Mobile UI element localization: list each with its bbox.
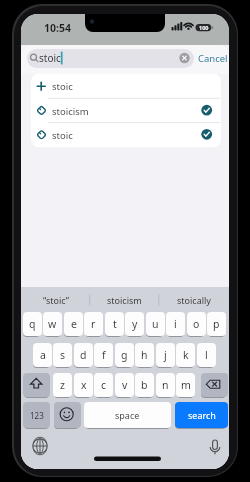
staticText: i — [174, 317, 177, 331]
button[interactable] — [31, 74, 221, 98]
staticText: q — [29, 317, 36, 331]
button[interactable]: x — [74, 373, 93, 397]
button[interactable]: d — [74, 343, 93, 367]
staticText: 123 — [30, 410, 44, 421]
button[interactable]: space — [84, 402, 171, 428]
staticText: a — [40, 348, 46, 362]
staticText: stoicism — [107, 294, 142, 306]
staticText: v — [122, 378, 128, 392]
button[interactable]: l — [197, 343, 216, 367]
staticText: c — [101, 378, 107, 392]
button[interactable] — [27, 49, 194, 68]
staticText: p — [213, 317, 220, 331]
button[interactable]: v — [115, 373, 134, 397]
staticText: y — [132, 317, 138, 331]
staticText: l — [205, 348, 208, 362]
staticText: x — [81, 378, 87, 392]
button[interactable] — [23, 373, 50, 397]
staticText: j — [164, 348, 167, 362]
staticText: h — [141, 348, 148, 362]
button[interactable]: t — [105, 312, 124, 336]
staticText: f — [102, 348, 106, 362]
button[interactable]: j — [156, 343, 175, 367]
button[interactable]: r — [84, 312, 103, 336]
button[interactable]: b — [135, 373, 154, 397]
staticText: stoically — [177, 294, 211, 306]
staticText: Cancel — [198, 52, 228, 65]
staticText: 10:54 — [44, 21, 71, 35]
button[interactable]: p — [207, 312, 226, 336]
button[interactable] — [90, 287, 159, 312]
button[interactable]: z — [53, 373, 72, 397]
button[interactable]: m — [176, 373, 195, 397]
button[interactable]: e — [64, 312, 83, 336]
button[interactable]: search — [175, 402, 228, 428]
button[interactable]: i — [166, 312, 185, 336]
staticText: u — [152, 317, 159, 331]
button[interactable]: n — [156, 373, 175, 397]
staticText: w — [48, 317, 57, 331]
staticText: “stoic” — [43, 294, 70, 306]
button[interactable]: u — [146, 312, 165, 336]
button[interactable] — [31, 98, 221, 122]
staticText: k — [183, 348, 189, 362]
staticText: t — [113, 317, 117, 331]
button[interactable]: h — [135, 343, 154, 367]
staticText: b — [141, 378, 148, 392]
button[interactable]: o — [187, 312, 206, 336]
button[interactable] — [159, 287, 229, 312]
staticText: s — [60, 348, 66, 362]
staticText: stoic — [52, 129, 73, 142]
button[interactable] — [31, 123, 221, 147]
staticText: stoic — [39, 51, 61, 65]
button[interactable]: w — [43, 312, 62, 336]
button[interactable]: 123 — [23, 402, 50, 428]
button[interactable]: q — [23, 312, 42, 336]
staticText: d — [80, 348, 87, 362]
staticText: 100 — [199, 24, 209, 31]
staticText: n — [162, 378, 169, 392]
button[interactable]: s — [53, 343, 72, 367]
staticText: g — [121, 348, 128, 362]
button[interactable]: k — [176, 343, 195, 367]
button[interactable]: y — [125, 312, 144, 336]
button[interactable]: a — [33, 343, 52, 367]
button[interactable]: Cancel — [192, 50, 229, 67]
button[interactable]: f — [94, 343, 113, 367]
staticText: space — [115, 409, 140, 421]
button[interactable]: g — [115, 343, 134, 367]
staticText: search — [188, 409, 216, 421]
staticText: stoicism — [52, 105, 89, 118]
staticText: m — [181, 378, 191, 392]
staticText: o — [193, 317, 200, 331]
staticText: r — [91, 317, 96, 331]
button[interactable] — [21, 287, 90, 312]
button[interactable] — [54, 402, 81, 428]
staticText: e — [71, 317, 77, 331]
button[interactable] — [201, 373, 228, 397]
button[interactable]: c — [94, 373, 113, 397]
staticText: stoic — [52, 80, 73, 93]
staticText: z — [60, 378, 65, 392]
